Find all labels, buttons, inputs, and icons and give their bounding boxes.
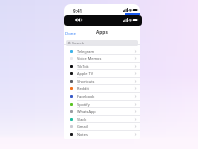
staticText: TikTok (77, 64, 89, 69)
button[interactable]: Voice Memos (64, 54, 140, 62)
staticText: Notes (77, 132, 88, 137)
button[interactable]: Facebook (64, 92, 140, 100)
button[interactable]: Now playing (64, 15, 142, 26)
staticText: Search (72, 41, 85, 46)
staticText: Spotify (77, 102, 90, 107)
button[interactable]: Shortcuts (64, 77, 140, 85)
staticText: 9:41 (73, 8, 83, 14)
button[interactable]: Apple TV (64, 69, 140, 77)
staticText: Apps (96, 29, 108, 36)
staticText: WhatsApp (77, 109, 96, 114)
staticText: Done (65, 30, 76, 36)
button[interactable]: WhatsApp (64, 107, 140, 115)
staticText: Telegram (77, 49, 95, 54)
button[interactable]: Telegram (64, 47, 140, 55)
staticText: Voice Memos (77, 56, 102, 61)
staticText: Reddit (77, 86, 89, 91)
button[interactable]: Done (65, 30, 76, 36)
staticText: Slack (77, 117, 87, 122)
staticText: Gmail (77, 124, 88, 129)
button[interactable]: TikTok (64, 62, 140, 70)
button[interactable]: Slack (64, 115, 140, 123)
button[interactable]: Notes (64, 130, 140, 138)
button[interactable]: Search (66, 40, 138, 46)
staticText: Apple TV (77, 71, 93, 76)
button[interactable]: Gmail (64, 122, 140, 130)
staticText: Facebook (77, 94, 95, 99)
button[interactable]: Reddit (64, 84, 140, 92)
button[interactable]: Spotify (64, 100, 140, 108)
staticText: Shortcuts (77, 79, 95, 84)
